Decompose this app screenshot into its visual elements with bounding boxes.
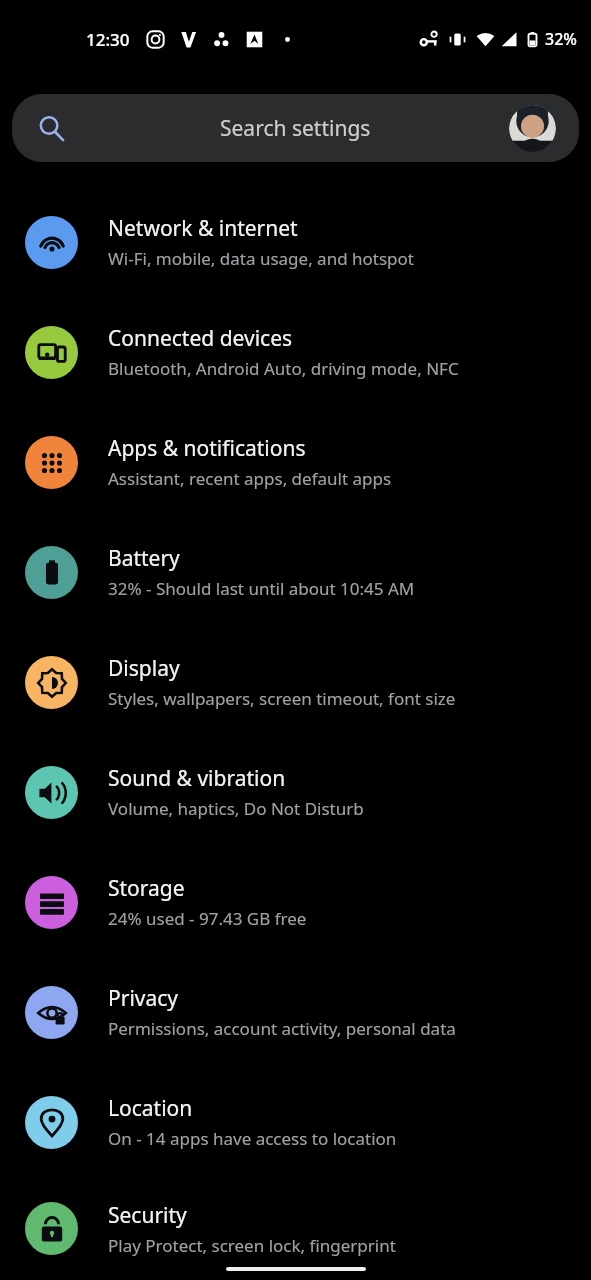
button[interactable]: Account [509,105,556,152]
staticText: 32% - Should last until about 10:45 AM [108,577,415,600]
button[interactable]: Apps & notifications [0,407,591,517]
staticText: 12:30 [86,28,130,51]
staticText: 24% used - 97.43 GB free [108,907,307,930]
staticText: Bluetooth, Android Auto, driving mode, N… [108,357,459,380]
button[interactable]: Sound & vibration [0,737,591,847]
staticText: Sound & vibration [108,764,286,793]
button[interactable]: Storage [0,847,591,957]
staticText: Security [108,1201,187,1230]
button[interactable]: Connected devices [0,297,591,407]
staticText: Wi-Fi, mobile, data usage, and hotspot [108,247,414,270]
staticText: Location [108,1094,193,1123]
staticText: Connected devices [108,324,293,353]
staticText: Storage [108,874,185,903]
button[interactable]: Network & internet [0,187,591,297]
staticText: Volume, haptics, Do Not Disturb [108,797,364,820]
staticText: Battery [108,544,180,573]
staticText: Network & internet [108,214,298,243]
staticText: Privacy [108,984,179,1013]
button[interactable]: Search [12,94,579,162]
staticText: Play Protect, screen lock, fingerprint [108,1234,396,1257]
button[interactable]: Location [0,1067,591,1177]
other: Search [38,115,65,142]
staticText: Assistant, recent apps, default apps [108,467,392,490]
staticText: Styles, wallpapers, screen timeout, font… [108,687,456,710]
staticText: 32% [545,28,577,50]
button[interactable]: Battery [0,517,591,627]
button[interactable]: Security [0,1177,591,1280]
staticText: Apps & notifications [108,434,306,463]
staticText: Display [108,654,180,683]
staticText: Permissions, account activity, personal … [108,1017,456,1040]
staticText: Search settings [220,114,371,143]
button[interactable]: Privacy [0,957,591,1067]
staticText: On - 14 apps have access to location [108,1127,397,1150]
button[interactable]: Display [0,627,591,737]
